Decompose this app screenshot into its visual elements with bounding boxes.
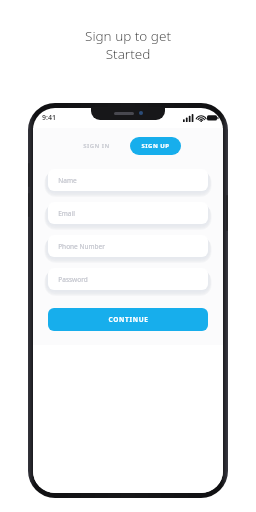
staticText: CONTINUE — [108, 315, 149, 324]
other: Status icons — [183, 114, 214, 122]
staticText: Sign up to get Started — [85, 27, 171, 63]
button[interactable]: CONTINUE — [48, 308, 208, 331]
staticText: Email — [58, 209, 75, 218]
staticText: Phone Number — [58, 242, 105, 251]
button[interactable]: Email — [48, 202, 208, 224]
button[interactable]: SIGN UP — [130, 137, 181, 155]
button[interactable]: Phone Number — [48, 235, 208, 257]
staticText: Name — [58, 176, 77, 185]
button[interactable]: Name — [48, 169, 208, 191]
staticText: SIGN IN — [83, 142, 110, 150]
staticText: Password — [58, 275, 88, 284]
staticText: 9:41 — [42, 113, 56, 123]
button[interactable]: SIGN IN — [75, 137, 118, 155]
staticText: SIGN UP — [141, 142, 170, 150]
button[interactable]: Password — [48, 268, 208, 290]
